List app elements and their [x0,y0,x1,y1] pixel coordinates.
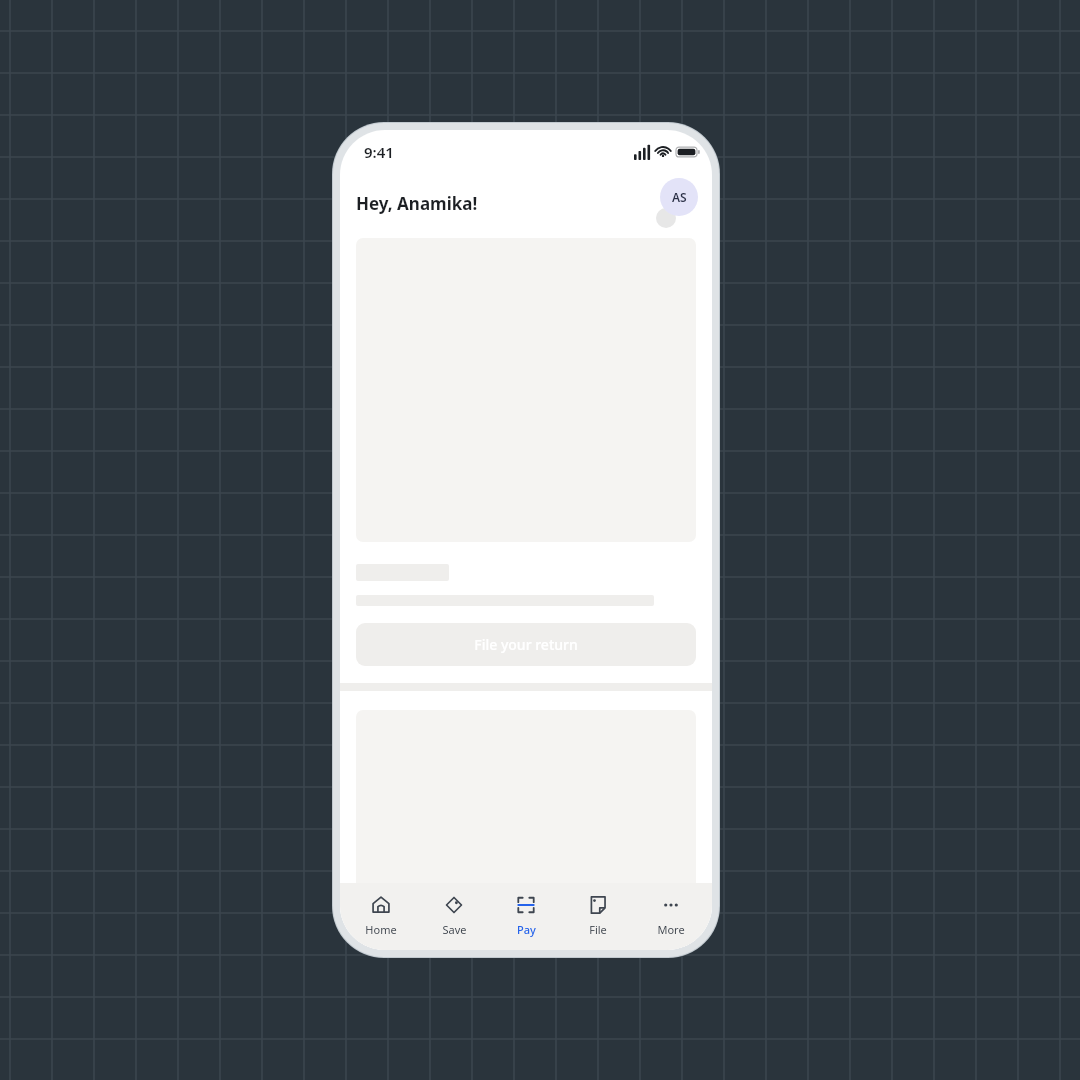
button[interactable]: Pay [495,892,557,939]
button[interactable]: Home [350,892,412,939]
staticText: More [657,922,685,937]
staticText: AS [672,189,687,205]
staticText: Home [365,922,397,937]
staticText: 9:41 [364,142,394,162]
staticText: Hey, Anamika! [356,192,478,215]
staticText: File your return [474,635,578,654]
button[interactable]: Save [423,892,485,939]
button[interactable]: File [567,892,629,939]
button[interactable]: Profile [652,176,698,230]
button[interactable]: File your return [356,623,696,666]
staticText: Pay [517,922,536,937]
staticText: File [589,922,607,937]
staticText: Save [442,922,467,937]
button[interactable] [356,710,696,950]
button[interactable]: More [640,892,702,939]
